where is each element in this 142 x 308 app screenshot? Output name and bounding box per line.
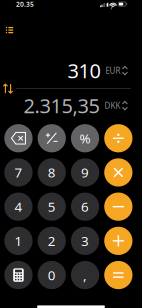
staticText: 5 xyxy=(48,198,56,215)
staticText: 3 xyxy=(81,232,89,250)
button[interactable]: Multiply xyxy=(104,158,132,187)
button[interactable]: 5 xyxy=(38,192,66,221)
button[interactable]: 1 xyxy=(4,227,33,255)
button[interactable]: 8 xyxy=(38,158,66,187)
button[interactable]: , xyxy=(71,261,99,289)
button[interactable]: 2 xyxy=(38,227,66,255)
staticText: 310 xyxy=(68,57,101,84)
button[interactable]: Equals xyxy=(104,261,132,289)
button[interactable]: 9 xyxy=(71,158,99,187)
staticText: % xyxy=(79,129,90,147)
staticText: 4 xyxy=(14,198,22,215)
staticText: 0 xyxy=(48,266,56,284)
button[interactable]: 4 xyxy=(4,192,33,221)
button[interactable]: Subtract xyxy=(104,192,132,221)
button[interactable]: Menu xyxy=(0,21,142,39)
button[interactable]: 2.315,35 xyxy=(0,95,142,116)
staticText: 8 xyxy=(48,164,56,181)
staticText: 9 xyxy=(81,164,89,181)
button[interactable]: 6 xyxy=(71,192,99,221)
button[interactable]: 310 xyxy=(0,60,142,81)
staticText: 7 xyxy=(14,164,22,181)
staticText: 2 xyxy=(48,232,56,250)
button[interactable]: Swap currencies xyxy=(0,82,16,95)
button[interactable]: 0 xyxy=(38,261,66,289)
staticText: DKK xyxy=(105,100,121,111)
staticText: 20.35 xyxy=(16,0,34,9)
button[interactable]: 3 xyxy=(71,227,99,255)
button[interactable]: Divide xyxy=(104,124,132,152)
staticText: 1 xyxy=(14,232,22,250)
button[interactable]: Delete xyxy=(4,124,33,152)
button[interactable]: % xyxy=(71,124,99,152)
button[interactable]: Toggle sign xyxy=(38,124,66,152)
button[interactable]: 7 xyxy=(4,158,33,187)
button[interactable]: Calculator xyxy=(4,261,33,289)
staticText: EUR xyxy=(106,65,121,76)
staticText: , xyxy=(83,266,87,284)
staticText: 6 xyxy=(81,198,89,215)
button[interactable]: Add xyxy=(104,227,132,255)
staticText: 2.315,35 xyxy=(24,92,100,119)
